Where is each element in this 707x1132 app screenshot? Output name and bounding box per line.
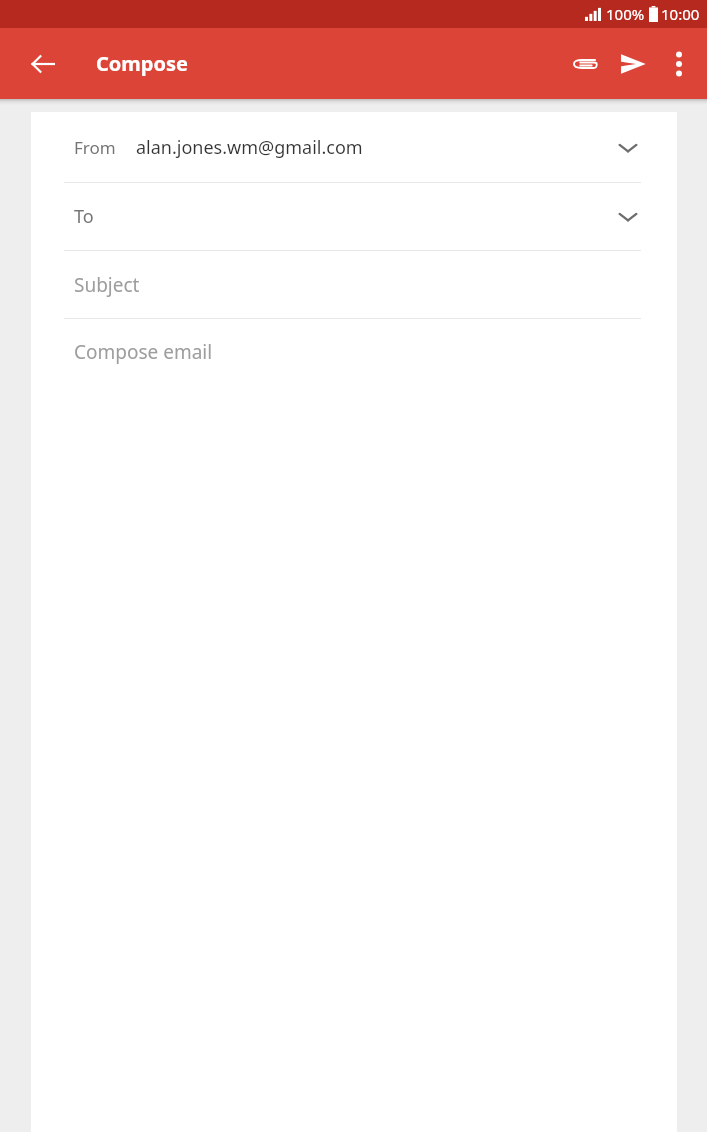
staticText: Compose — [96, 50, 188, 77]
staticText: alan.jones.wm@gmail.com — [136, 135, 363, 160]
button[interactable]: Attach file — [561, 40, 609, 88]
button[interactable]: More options — [657, 42, 701, 86]
button[interactable]: Navigate up — [19, 40, 67, 88]
button[interactable]: Send — [609, 40, 657, 88]
staticText: Compose email — [74, 339, 213, 365]
button[interactable]: From — [31, 112, 677, 182]
button[interactable]: Subject — [31, 251, 677, 318]
staticText: 10:00 — [661, 4, 700, 24]
staticText: Subject — [74, 272, 140, 298]
staticText: To — [74, 204, 94, 229]
staticText: From — [74, 136, 116, 159]
staticText: 100% — [606, 4, 645, 24]
button[interactable]: To — [31, 183, 677, 250]
